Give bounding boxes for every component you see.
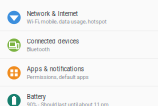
- staticText: Wi-Fi, mobile, data usage, hotspot: [27, 18, 107, 25]
- staticText: Permissions, default apps: [27, 74, 89, 80]
- button[interactable]: Battery: [0, 87, 158, 106]
- staticText: Apps & notifications: [27, 65, 84, 73]
- staticText: Battery: [27, 93, 46, 100]
- staticText: Bluetooth: [27, 46, 50, 52]
- button[interactable]: Apps & notifications: [0, 59, 158, 87]
- staticText: 90% - Should last until about 11 pm: [27, 101, 109, 106]
- button[interactable]: Network & Internet: [0, 4, 158, 31]
- staticText: Connected devices: [27, 38, 79, 45]
- button[interactable]: Connected devices: [0, 31, 158, 59]
- staticText: Network & Internet: [27, 10, 78, 17]
